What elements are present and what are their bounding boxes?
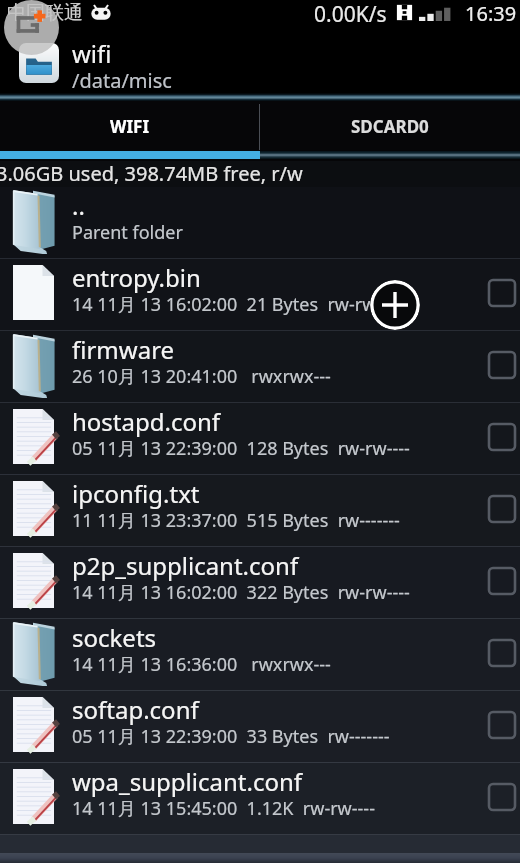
staticText: ipconfig.txt — [72, 477, 200, 510]
button[interactable]: p2p_supplicant.conf — [0, 547, 520, 618]
button[interactable]: Select ipconfig.txt — [476, 475, 520, 546]
staticText: sockets — [72, 621, 157, 654]
staticText: 05 11月 13 22:39:00 33 Bytes rw------- — [72, 724, 390, 749]
button[interactable]: Select entropy.bin — [476, 259, 520, 330]
staticText: 0.00K/s — [314, 0, 387, 25]
button[interactable]: ipconfig.txt — [0, 475, 520, 546]
staticText: wpa_supplicant.conf — [72, 765, 303, 798]
staticText: 11 11月 13 23:37:00 515 Bytes rw------- — [72, 508, 400, 533]
button[interactable]: Select wpa_supplicant.conf — [476, 763, 520, 834]
button[interactable]: Add — [370, 280, 420, 330]
staticText: 3.06GB used, 398.74MB free, r/w — [0, 160, 303, 186]
staticText: 14 11月 13 16:02:00 322 Bytes rw-rw---- — [72, 580, 410, 605]
button[interactable]: Assistant — [4, 0, 59, 55]
staticText: 16:39 — [465, 0, 517, 25]
button[interactable]: hostapd.conf — [0, 403, 520, 474]
staticText: wifi — [72, 37, 112, 70]
staticText: Parent folder — [72, 220, 183, 245]
staticText: 26 10月 13 20:41:00 rwxrwx--- — [72, 364, 331, 389]
staticText: entropy.bin — [72, 261, 201, 294]
button[interactable]: Select p2p_supplicant.conf — [476, 547, 520, 618]
staticText: firmware — [72, 333, 175, 366]
staticText: 14 11月 13 16:02:00 21 Bytes rw-rw- — [72, 292, 383, 317]
button[interactable]: WIFI — [0, 101, 259, 161]
staticText: softap.conf — [72, 693, 199, 726]
button[interactable]: .. — [0, 187, 520, 258]
button[interactable]: wpa_supplicant.conf — [0, 763, 520, 834]
button[interactable]: softap.conf — [0, 691, 520, 762]
staticText: 14 11月 13 16:36:00 rwxrwx--- — [72, 652, 331, 677]
staticText: .. — [72, 189, 85, 222]
staticText: /data/misc — [72, 67, 172, 94]
button[interactable]: entropy.bin — [0, 259, 520, 330]
staticText: 05 11月 13 22:39:00 128 Bytes rw-rw---- — [72, 436, 410, 461]
button[interactable]: Select firmware — [476, 331, 520, 402]
staticText: hostapd.conf — [72, 405, 221, 438]
staticText: 14 11月 13 15:45:00 1.12K rw-rw---- — [72, 796, 375, 821]
staticText: p2p_supplicant.conf — [72, 549, 299, 582]
button[interactable]: Select hostapd.conf — [476, 403, 520, 474]
staticText: SDCARD0 — [351, 115, 429, 138]
button[interactable]: Select sockets — [476, 619, 520, 690]
button[interactable]: Select softap.conf — [476, 691, 520, 762]
button[interactable]: sockets — [0, 619, 520, 690]
staticText: WIFI — [110, 115, 149, 138]
staticText: 中国联通 — [7, 1, 83, 25]
button[interactable]: SDCARD0 — [260, 101, 520, 161]
button[interactable]: firmware — [0, 331, 520, 402]
